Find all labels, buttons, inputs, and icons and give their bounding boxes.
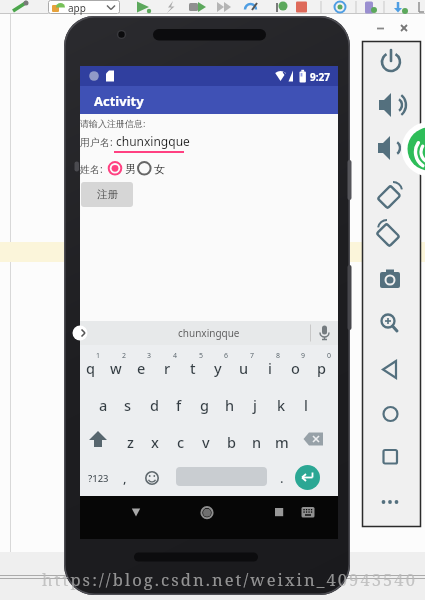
button[interactable]: j bbox=[244, 390, 266, 420]
button[interactable]: h bbox=[219, 390, 241, 420]
staticText: z bbox=[127, 432, 134, 452]
button[interactable]: t bbox=[182, 353, 204, 383]
button[interactable]: chunxingque bbox=[178, 326, 240, 340]
button[interactable]: x bbox=[144, 427, 166, 457]
staticText: https://blog.csdn.net/weixin_40943540 bbox=[42, 568, 417, 590]
staticText: b bbox=[227, 432, 236, 452]
staticText: 6 bbox=[224, 351, 229, 361]
staticText: f bbox=[176, 395, 182, 415]
button[interactable]: r bbox=[156, 353, 178, 383]
staticText: y bbox=[214, 358, 222, 378]
button[interactable]: app bbox=[48, 0, 120, 14]
staticText: u bbox=[239, 358, 249, 378]
button[interactable]: s bbox=[117, 390, 139, 420]
button[interactable]: 男 bbox=[107, 159, 137, 177]
button[interactable] bbox=[378, 448, 403, 468]
button[interactable]: ?123 bbox=[84, 464, 113, 492]
button[interactable] bbox=[378, 53, 403, 73]
button[interactable] bbox=[378, 312, 403, 332]
staticText: Activity bbox=[94, 92, 144, 110]
staticText: app bbox=[68, 1, 86, 15]
button[interactable]: n bbox=[246, 427, 268, 457]
button[interactable]: b bbox=[220, 427, 242, 457]
button[interactable]: a bbox=[92, 390, 114, 420]
staticText: 8 bbox=[276, 351, 281, 361]
staticText: r bbox=[164, 358, 171, 378]
button[interactable]: q bbox=[79, 353, 101, 383]
staticText: k bbox=[277, 395, 286, 415]
button[interactable]: chunxingque bbox=[113, 130, 201, 154]
staticText: 5 bbox=[199, 351, 204, 361]
staticText: 7 bbox=[250, 351, 255, 361]
button[interactable] bbox=[378, 405, 403, 425]
button[interactable] bbox=[295, 464, 320, 492]
button[interactable] bbox=[271, 505, 287, 519]
staticText: 2 bbox=[122, 351, 127, 361]
staticText: v bbox=[202, 432, 210, 452]
button[interactable] bbox=[378, 225, 403, 245]
button[interactable] bbox=[378, 360, 403, 380]
button[interactable] bbox=[86, 429, 110, 455]
button[interactable]: w bbox=[105, 353, 127, 383]
staticText: 男 bbox=[125, 162, 136, 176]
staticText: c bbox=[177, 432, 185, 452]
button[interactable] bbox=[128, 505, 144, 519]
button[interactable]: p bbox=[310, 353, 332, 383]
staticText: 9 bbox=[301, 351, 306, 361]
staticText: 姓名: bbox=[80, 162, 103, 176]
staticText: a bbox=[99, 395, 108, 415]
button[interactable] bbox=[378, 187, 403, 207]
button[interactable]: u bbox=[233, 353, 255, 383]
button[interactable]: y bbox=[207, 353, 229, 383]
staticText: h bbox=[225, 395, 235, 415]
button[interactable]: 女 bbox=[137, 159, 167, 177]
staticText: j bbox=[253, 395, 257, 415]
staticText: chunxingque bbox=[116, 133, 190, 149]
button[interactable]: g bbox=[193, 390, 215, 420]
staticText: l bbox=[304, 395, 308, 415]
staticText: 9:27 bbox=[310, 70, 330, 84]
staticText: 1 bbox=[96, 351, 101, 361]
button[interactable]: m bbox=[271, 427, 293, 457]
staticText: e bbox=[137, 358, 146, 378]
staticText: m bbox=[275, 432, 289, 452]
button[interactable] bbox=[378, 139, 403, 159]
button[interactable] bbox=[302, 429, 328, 455]
staticText: 请输入注册信息: bbox=[80, 117, 146, 129]
staticText: chunxingque bbox=[178, 326, 240, 340]
staticText: 0 bbox=[327, 351, 332, 361]
staticText: 女 bbox=[154, 162, 165, 176]
staticText: t bbox=[190, 358, 196, 378]
button[interactable]: z bbox=[119, 427, 141, 457]
button[interactable]: l bbox=[295, 390, 317, 420]
staticText: q bbox=[86, 358, 95, 378]
button[interactable]: e bbox=[130, 353, 152, 383]
staticText: 3 bbox=[147, 351, 152, 361]
button[interactable]: 注册 bbox=[81, 182, 133, 207]
staticText: s bbox=[124, 395, 132, 415]
staticText: ?123 bbox=[88, 472, 109, 485]
button[interactable] bbox=[378, 271, 403, 291]
button[interactable] bbox=[143, 464, 161, 492]
button[interactable]: . bbox=[275, 464, 289, 492]
button[interactable] bbox=[378, 96, 403, 116]
button[interactable]: o bbox=[284, 353, 306, 383]
staticText: 用户名: bbox=[80, 135, 113, 149]
staticText: w bbox=[110, 358, 122, 378]
staticText: g bbox=[200, 395, 209, 415]
button[interactable]: d bbox=[143, 390, 165, 420]
button[interactable] bbox=[199, 505, 215, 519]
button[interactable]: f bbox=[168, 390, 190, 420]
button[interactable] bbox=[378, 493, 403, 513]
staticText: p bbox=[317, 358, 326, 378]
button[interactable]: c bbox=[170, 427, 192, 457]
staticText: , bbox=[123, 469, 127, 487]
staticText: d bbox=[150, 395, 159, 415]
staticText: n bbox=[252, 432, 262, 452]
button[interactable] bbox=[300, 505, 318, 519]
button[interactable]: k bbox=[270, 390, 292, 420]
button[interactable]: i bbox=[259, 353, 281, 383]
button[interactable]: v bbox=[195, 427, 217, 457]
button[interactable]: , bbox=[118, 464, 132, 492]
